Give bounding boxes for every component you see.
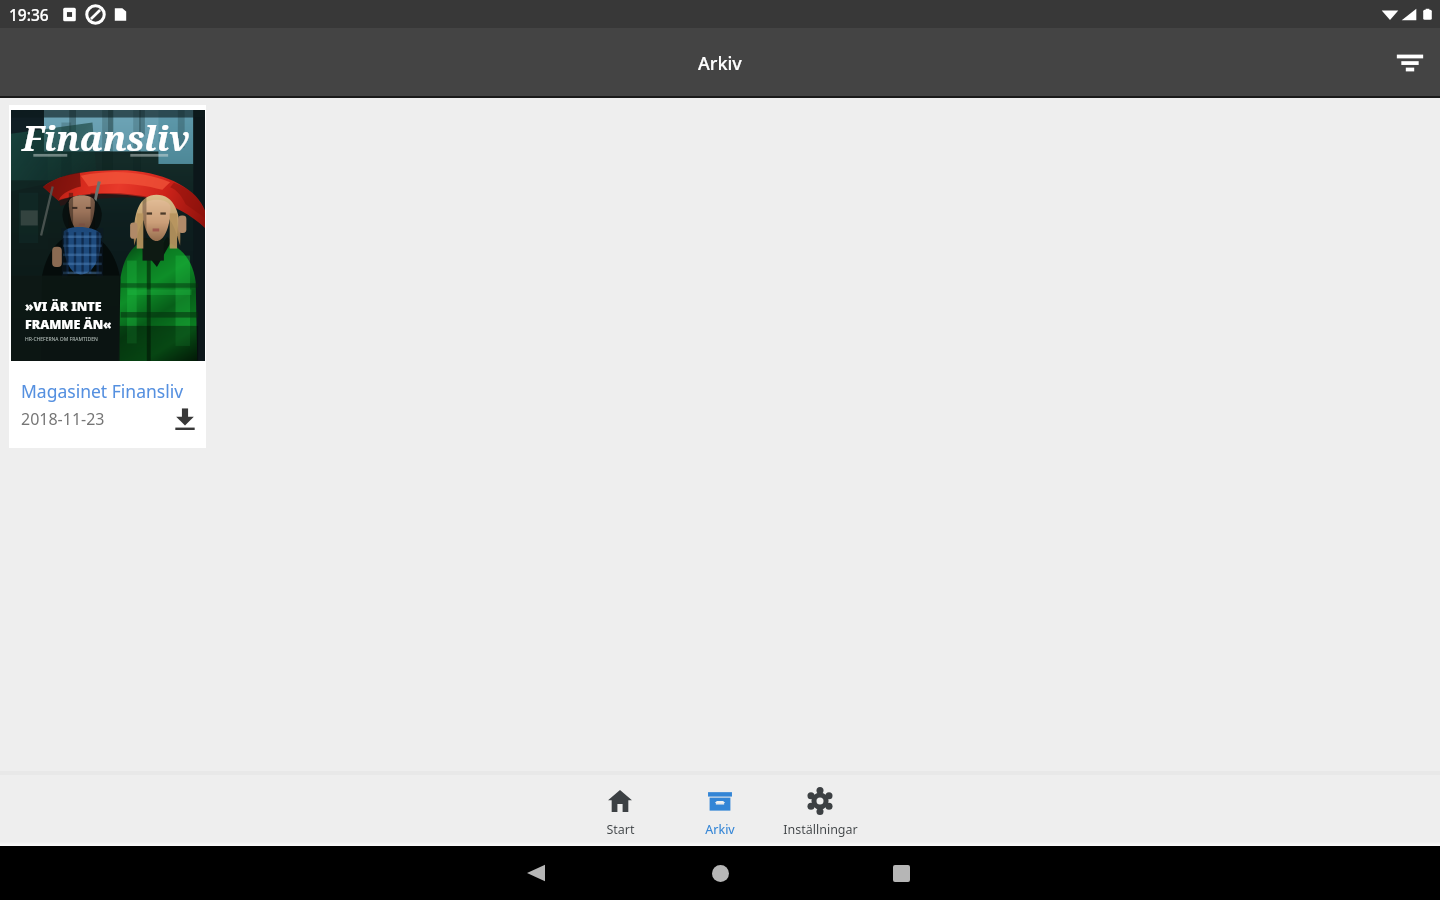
staticText: Arkiv [698, 51, 742, 76]
staticText: Start [606, 821, 635, 838]
button[interactable]: Finansliv [9, 105, 206, 448]
button[interactable]: Recents [871, 846, 931, 900]
staticText: 19:36 [9, 4, 49, 25]
button[interactable]: Inställningar [770, 771, 870, 842]
button[interactable]: Filter [1386, 39, 1434, 87]
staticText: HR-CHEFERNA OM FRAMTIDEN [25, 336, 98, 343]
button[interactable]: Back [506, 846, 566, 900]
button[interactable]: Arkiv [670, 771, 770, 842]
staticText: Finansliv [22, 114, 190, 162]
staticText: FRAMME ÄN« [25, 316, 112, 333]
staticText: 2018-11-23 [21, 408, 105, 430]
staticText: »VI ÄR INTE [25, 298, 102, 315]
button[interactable]: Download [170, 404, 200, 434]
staticText: Arkiv [705, 821, 735, 838]
staticText: Inställningar [783, 821, 858, 838]
button[interactable]: Start [570, 771, 670, 842]
staticText: Magasinet Finansliv [21, 379, 184, 403]
button[interactable]: Home [690, 846, 750, 900]
